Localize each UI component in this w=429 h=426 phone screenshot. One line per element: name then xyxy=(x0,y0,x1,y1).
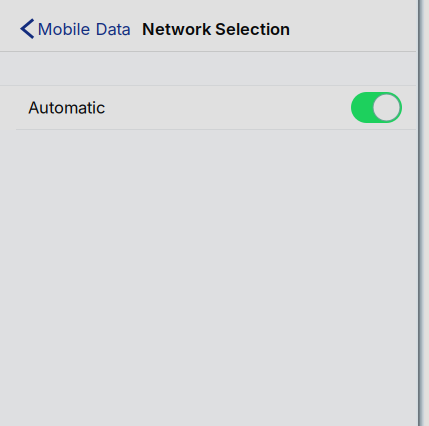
button[interactable]: Mobile Data xyxy=(0,7,130,51)
staticText: Mobile Data xyxy=(37,19,130,39)
button[interactable]: Automatic xyxy=(0,86,429,129)
staticText: Automatic xyxy=(28,97,105,117)
staticText: Network Selection xyxy=(142,19,290,39)
